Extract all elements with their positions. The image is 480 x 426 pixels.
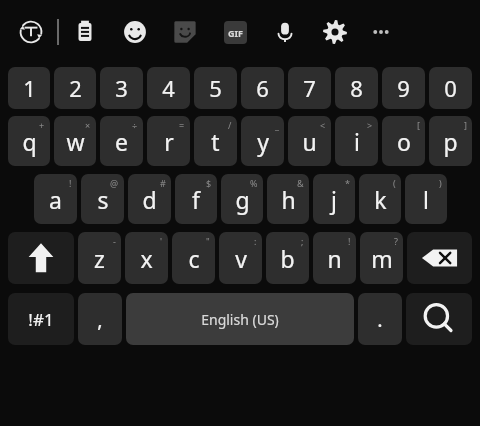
staticText: 3 (115, 73, 128, 103)
button[interactable]: r (147, 116, 190, 166)
button[interactable]: 4 (147, 67, 190, 109)
button[interactable]: k (359, 174, 401, 224)
button[interactable]: GIF (215, 12, 255, 52)
button[interactable]: n (313, 232, 356, 284)
button[interactable]: x (125, 232, 168, 284)
staticText: ( (393, 177, 396, 189)
button[interactable]: !#1 (8, 293, 74, 345)
button[interactable]: English (US) (126, 293, 354, 345)
staticText: f (192, 184, 200, 215)
staticText: ; (301, 235, 304, 247)
button[interactable]: 6 (241, 67, 284, 109)
staticText: 2 (69, 73, 82, 103)
button[interactable]: j (313, 174, 355, 224)
button[interactable]: More options (361, 12, 401, 52)
button[interactable]: i (335, 116, 378, 166)
button[interactable]: a (34, 174, 77, 224)
staticText: English (US) (201, 310, 279, 329)
staticText: i (354, 126, 360, 157)
staticText: x (140, 243, 153, 274)
button[interactable]: 9 (382, 67, 425, 109)
staticText: t (211, 126, 220, 157)
button[interactable]: d (128, 174, 171, 224)
button[interactable]: c (172, 232, 215, 284)
staticText: d (142, 184, 157, 215)
staticText: q (22, 126, 37, 157)
button[interactable]: 0 (429, 67, 472, 109)
button[interactable]: m (360, 232, 403, 284)
staticText: ' (160, 235, 163, 247)
staticText: b (280, 243, 295, 274)
button[interactable]: Stickers (165, 12, 205, 52)
staticText: 6 (256, 73, 269, 103)
staticText: * (345, 177, 350, 189)
staticText: 5 (209, 73, 222, 103)
staticText: [ (417, 119, 420, 131)
staticText: ! (348, 235, 351, 247)
staticText: s (97, 184, 109, 215)
staticText: @ (110, 177, 119, 189)
staticText: k (374, 184, 387, 215)
button[interactable]: s (81, 174, 124, 224)
button[interactable]: w (54, 116, 96, 166)
button[interactable]: Clipboard (65, 12, 105, 52)
staticText: p (443, 126, 458, 157)
button[interactable]: 1 (8, 67, 50, 109)
staticText: < (320, 119, 326, 131)
button[interactable]: Backspace (407, 232, 472, 284)
button[interactable]: v (219, 232, 262, 284)
staticText: 9 (397, 73, 410, 103)
button[interactable]: f (175, 174, 217, 224)
button[interactable]: 7 (288, 67, 331, 109)
button[interactable]: u (288, 116, 331, 166)
button[interactable]: , (78, 293, 122, 345)
staticText: # (160, 177, 166, 189)
button[interactable]: t (194, 116, 237, 166)
button[interactable]: e (100, 116, 143, 166)
staticText: 0 (444, 73, 457, 103)
button[interactable]: o (382, 116, 425, 166)
staticText: l (423, 184, 429, 215)
staticText: !#1 (28, 308, 54, 331)
staticText: n (327, 243, 342, 274)
button[interactable]: q (8, 116, 50, 166)
button[interactable]: Settings (315, 12, 355, 52)
staticText: ) (439, 177, 442, 189)
staticText: h (281, 184, 296, 215)
staticText: - (113, 235, 116, 247)
staticText: / (228, 119, 232, 131)
button[interactable]: l (405, 174, 447, 224)
button[interactable]: Shift (8, 232, 74, 284)
staticText: w (66, 126, 85, 157)
button[interactable]: 2 (54, 67, 96, 109)
staticText: " (206, 235, 210, 247)
button[interactable]: p (429, 116, 472, 166)
staticText: ] (464, 119, 467, 131)
button[interactable]: Emoji (115, 12, 155, 52)
button[interactable]: Translate (11, 12, 51, 52)
button[interactable]: 5 (194, 67, 237, 109)
button[interactable]: . (358, 293, 402, 345)
staticText: y (257, 126, 269, 157)
button[interactable]: 8 (335, 67, 378, 109)
staticText: 4 (162, 73, 175, 103)
button[interactable]: z (78, 232, 121, 284)
staticText: v (235, 243, 247, 274)
staticText: 7 (303, 73, 316, 103)
staticText: m (371, 243, 393, 274)
button[interactable]: Search (406, 293, 472, 345)
staticText: = (179, 119, 185, 131)
button[interactable]: y (241, 116, 284, 166)
button[interactable]: b (266, 232, 309, 284)
staticText: . (377, 306, 383, 333)
staticText: 8 (350, 73, 363, 103)
staticText: r (164, 126, 174, 157)
button[interactable]: g (221, 174, 263, 224)
staticText: e (115, 126, 128, 157)
button[interactable]: 3 (100, 67, 143, 109)
staticText: ! (69, 177, 72, 189)
button[interactable]: Voice input (265, 12, 305, 52)
staticText: & (297, 177, 304, 189)
staticText: 1 (23, 73, 36, 103)
button[interactable]: h (267, 174, 309, 224)
